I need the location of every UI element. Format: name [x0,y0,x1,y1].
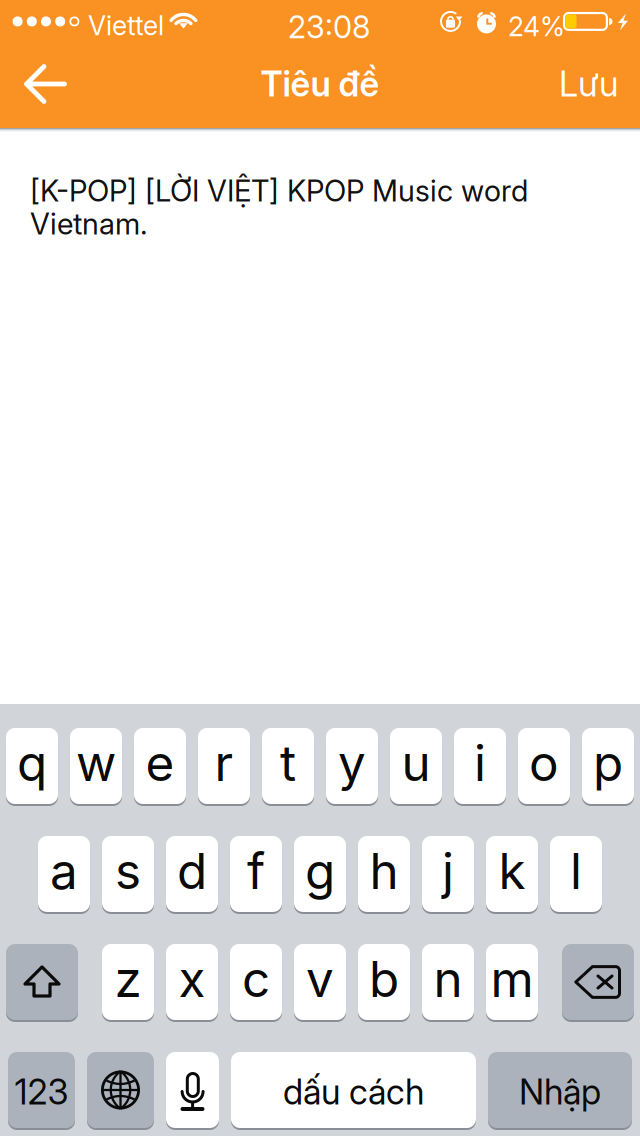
staticText: 23:08 [288,8,370,45]
staticText: 24% [508,10,565,43]
button[interactable]: z [102,943,154,1021]
button[interactable]: q [6,727,58,805]
button[interactable]: b [358,943,410,1021]
button[interactable]: Lưu [541,40,640,128]
button[interactable]: y [326,727,378,805]
staticText: g [305,841,335,901]
staticText: o [529,733,559,793]
button[interactable]: d [166,835,218,913]
staticText: x [178,949,205,1009]
staticText: a [50,841,78,901]
button[interactable]: 123 [8,1051,75,1129]
staticText: 123 [14,1071,68,1113]
staticText: t [280,733,296,793]
staticText: b [369,949,399,1009]
staticText: Vietnam. [30,206,148,241]
staticText: e [145,733,174,793]
button[interactable]: a [38,835,90,913]
staticText: l [570,841,582,901]
button[interactable]: s [102,835,154,913]
staticText: m [490,949,533,1009]
button[interactable]: l [550,835,602,913]
staticText: f [247,841,265,901]
staticText: Viettel [88,9,164,42]
button[interactable]: h [358,835,410,913]
button[interactable]: n [422,943,474,1021]
staticText: Nhập [519,1071,601,1113]
staticText: h [369,841,398,901]
staticText: Lưu [559,63,618,105]
staticText: j [442,841,454,901]
staticText: [K-POP] [LỜI VIỆT] KPOP Music word [30,173,528,208]
button[interactable]: Next keyboard [87,1051,154,1129]
staticText: dấu cách [283,1071,424,1113]
button[interactable]: u [390,727,442,805]
staticText: v [306,949,334,1009]
staticText: d [177,841,207,901]
button[interactable]: i [454,727,506,805]
button[interactable]: w [70,727,122,805]
button[interactable]: Nhập [488,1051,632,1129]
staticText: p [593,733,623,793]
button[interactable]: e [134,727,186,805]
button[interactable]: m [486,943,538,1021]
staticText: c [242,949,270,1009]
button[interactable]: k [486,835,538,913]
staticText: z [114,949,141,1009]
button[interactable]: f [230,835,282,913]
staticText: Tiêu đề [260,63,379,105]
button[interactable]: Shift [6,943,78,1021]
button[interactable]: Delete [562,943,634,1021]
staticText: q [17,733,47,793]
staticText: u [401,733,430,793]
button[interactable]: v [294,943,346,1021]
button[interactable]: g [294,835,346,913]
button[interactable]: o [518,727,570,805]
button[interactable]: dấu cách [231,1051,476,1129]
staticText: s [115,841,141,901]
staticText: r [214,733,233,793]
button[interactable]: j [422,835,474,913]
staticText: y [338,733,366,793]
button[interactable]: Back [0,40,85,128]
staticText: i [474,733,486,793]
button[interactable]: r [198,727,250,805]
button[interactable]: p [582,727,634,805]
button[interactable]: x [166,943,218,1021]
staticText: w [76,733,116,793]
button[interactable]: c [230,943,282,1021]
staticText: k [498,841,525,901]
staticText: n [433,949,462,1009]
button[interactable]: Dictation [166,1051,219,1129]
button[interactable]: t [262,727,314,805]
